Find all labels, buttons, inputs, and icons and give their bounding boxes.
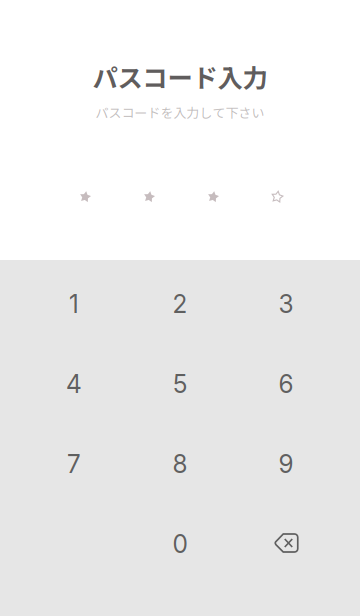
button[interactable]: 7 xyxy=(21,424,127,504)
button[interactable]: 8 xyxy=(127,424,233,504)
button[interactable]: 1 xyxy=(21,264,127,344)
staticText: 5 xyxy=(173,369,187,399)
staticText: 4 xyxy=(66,369,82,399)
button[interactable]: 3 xyxy=(233,264,339,344)
staticText: 3 xyxy=(278,289,293,319)
button[interactable]: 5 xyxy=(127,344,233,424)
staticText: 2 xyxy=(172,289,187,319)
staticText: パスコード入力 xyxy=(92,58,267,95)
button[interactable]: Delete xyxy=(233,504,339,584)
staticText: パスコードを入力して下さい xyxy=(95,103,264,121)
button[interactable]: 4 xyxy=(21,344,127,424)
staticText: 1 xyxy=(69,289,79,319)
staticText: 0 xyxy=(172,529,187,559)
button[interactable]: 9 xyxy=(233,424,339,504)
button[interactable]: 6 xyxy=(233,344,339,424)
staticText: 7 xyxy=(67,449,81,479)
staticText: 6 xyxy=(278,369,293,399)
button[interactable]: 0 xyxy=(127,504,233,584)
button[interactable]: 2 xyxy=(127,264,233,344)
staticText: 9 xyxy=(278,449,293,479)
staticText: 8 xyxy=(172,449,187,479)
